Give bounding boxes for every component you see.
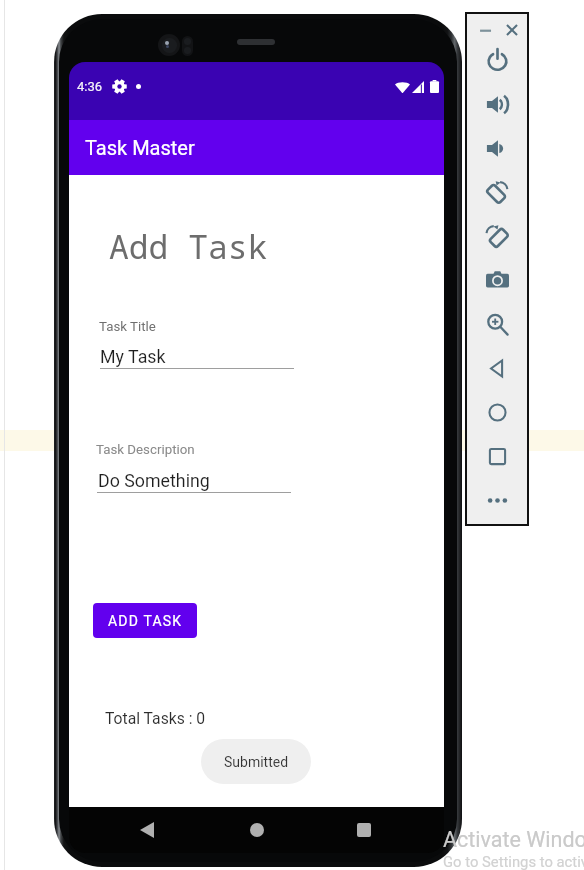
button[interactable]: Close [503,21,521,39]
button[interactable]: Power [467,38,527,82]
button[interactable]: More [467,478,527,522]
staticText: Task Title [99,319,156,335]
staticText: Total Tasks : 0 [105,709,206,727]
staticText: Task Master [85,136,195,159]
button[interactable]: Submitted [201,739,311,784]
button[interactable]: Overview [467,434,527,478]
button[interactable]: Back [130,807,235,853]
staticText: Do Something [98,470,210,491]
staticText: Submitted [224,754,289,770]
staticText: My Task [100,346,166,367]
button[interactable]: Task Master [69,120,444,175]
staticText: Activate Windows [443,827,584,852]
button[interactable]: Volume up [467,82,527,126]
staticText: Go to Settings to activate Windows. [443,853,584,870]
button[interactable]: Minimize [477,21,495,39]
button[interactable]: Rotate right [467,214,527,258]
button[interactable]: Zoom [467,302,527,346]
staticText: Task Description [96,442,195,458]
button[interactable]: Take screenshot [467,258,527,302]
button[interactable]: Back [467,346,527,390]
button[interactable]: Home [229,807,285,853]
button[interactable]: Volume down [467,126,527,170]
staticText: Add Task [109,224,268,269]
button[interactable]: Rotate left [467,170,527,214]
staticText: ADD TASK [108,613,183,629]
staticText: 4:36 [77,79,103,94]
button[interactable]: Recent apps [336,807,392,853]
button[interactable]: Home [467,390,527,434]
button[interactable]: ADD TASK [93,603,197,638]
